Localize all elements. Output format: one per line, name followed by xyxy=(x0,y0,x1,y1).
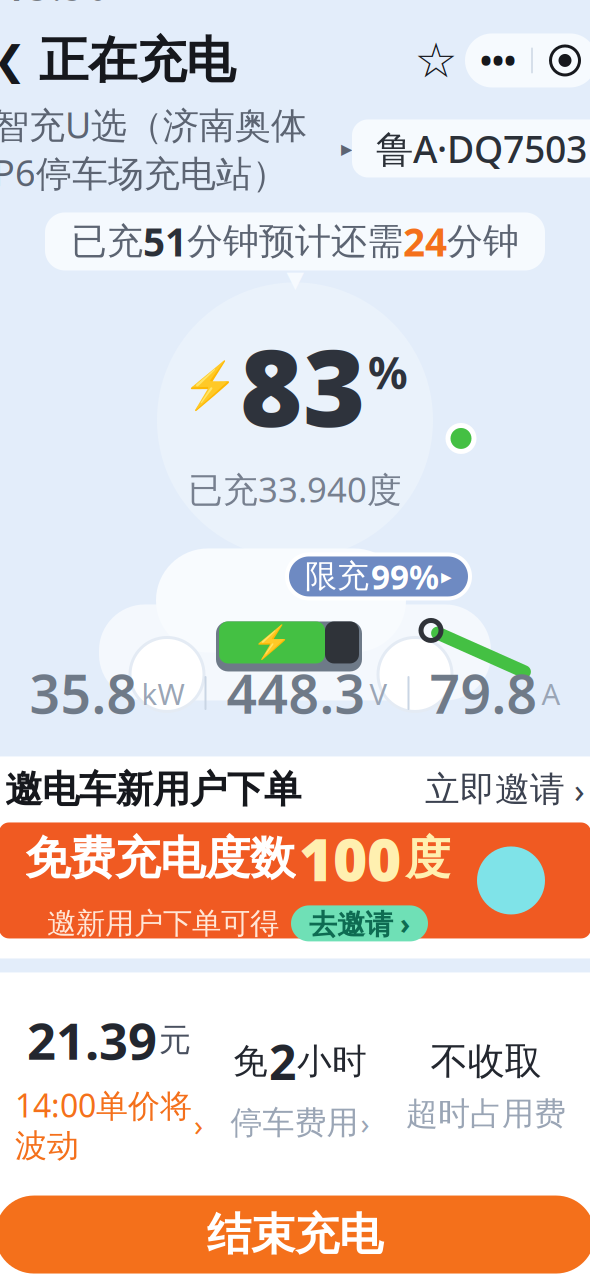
staticText: 448.3 xyxy=(226,658,365,728)
staticText: % xyxy=(368,343,408,401)
staticText: ⚡ xyxy=(252,624,292,661)
staticText: 小时 xyxy=(297,1040,367,1083)
staticText: 51 xyxy=(143,216,187,267)
staticText: kW xyxy=(141,674,184,713)
staticText: › xyxy=(360,1103,369,1142)
button[interactable]: 免费充电度数 xyxy=(0,822,590,958)
staticText: 分钟预计还需 xyxy=(187,219,403,263)
staticText: › xyxy=(194,1105,203,1144)
button[interactable]: 21.39 xyxy=(11,1006,207,1166)
button[interactable]: 邀电车新用户下单 xyxy=(0,756,590,822)
staticText: 35.8 xyxy=(29,658,137,728)
staticText: ⚡ xyxy=(182,359,238,411)
staticText: 停车费用 xyxy=(230,1103,358,1142)
staticText: ☆ xyxy=(414,33,457,88)
button[interactable]: 免 xyxy=(207,1029,393,1142)
staticText: ▼ xyxy=(286,266,303,292)
staticText: A xyxy=(541,674,560,713)
staticText: 已充33.940度 xyxy=(188,466,402,512)
staticText: 度 xyxy=(405,831,450,886)
staticText: ▸ xyxy=(441,564,452,589)
staticText: 邀电车新用户下单 xyxy=(5,766,301,812)
staticText: › xyxy=(565,766,585,812)
staticText: 鲁A·DQ7503 xyxy=(376,124,587,173)
staticText: 去邀请 › xyxy=(309,905,410,942)
staticText: 14:00单价将波动 xyxy=(15,1084,192,1165)
staticText: 99% xyxy=(371,554,439,599)
staticText: 2 xyxy=(269,1029,296,1093)
button[interactable]: 智充U选（济南奥体P6停车场充电站） xyxy=(0,101,352,196)
staticText: 元 xyxy=(159,1020,191,1060)
staticText: 83 xyxy=(240,314,366,456)
button[interactable]: ❮ xyxy=(0,22,235,99)
staticText: 已充 xyxy=(71,219,143,263)
staticText: 智充U选（济南奥体P6停车场充电站） xyxy=(0,101,307,196)
staticText: 免费充电度数 xyxy=(25,831,295,886)
staticText: 超时占用费 xyxy=(406,1094,566,1134)
staticText: 100 xyxy=(299,819,401,897)
button[interactable]: 鲁A·DQ7503 xyxy=(352,119,590,177)
staticText: 免 xyxy=(233,1040,268,1083)
staticText: 24 xyxy=(403,216,447,267)
staticText: 立即邀请 xyxy=(425,768,565,811)
button[interactable]: 结束充电 xyxy=(0,1195,590,1273)
staticText: V xyxy=(369,674,387,713)
staticText: 不收取 xyxy=(430,1038,541,1084)
staticText: ▸ xyxy=(341,136,352,161)
staticText: ❮ xyxy=(0,38,27,83)
staticText: 13:50 xyxy=(3,0,110,12)
staticText: 79.8 xyxy=(429,658,537,728)
button[interactable]: 收藏 xyxy=(407,33,465,87)
staticText: 限充 xyxy=(305,557,369,596)
button[interactable]: 更多 xyxy=(465,33,531,87)
staticText: 结束充电 xyxy=(207,1207,383,1261)
button[interactable]: 定位 xyxy=(533,33,590,87)
button[interactable]: 限充 xyxy=(287,554,470,598)
staticText: ••• xyxy=(480,39,516,82)
staticText: 邀新用户下单可得 xyxy=(47,905,279,941)
staticText: 分钟 xyxy=(447,219,519,263)
staticText: 21.39 xyxy=(27,1006,157,1074)
staticText: 正在充电 xyxy=(39,30,235,91)
